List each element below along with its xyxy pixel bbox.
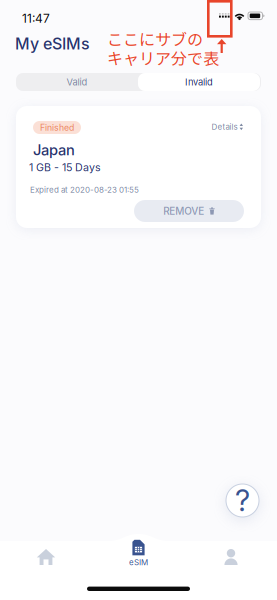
button[interactable]: Home	[0, 544, 92, 570]
button[interactable]: Valid	[16, 73, 138, 91]
staticText: ここにサブの	[107, 27, 203, 50]
staticText: Finished	[40, 122, 74, 133]
staticText: Details	[212, 122, 238, 132]
staticText: 1 GB - 15 Days	[29, 161, 101, 174]
button[interactable]: Invalid	[138, 73, 260, 91]
staticText: REMOVE	[163, 205, 204, 217]
button[interactable]: Help	[226, 484, 259, 517]
staticText: Invalid	[185, 76, 213, 88]
staticText: Valid	[66, 76, 87, 88]
staticText: キャリア分で表	[107, 46, 219, 69]
staticText: 11:47	[22, 11, 50, 25]
staticText: Japan	[33, 141, 75, 159]
staticText: ?	[235, 483, 250, 518]
button[interactable]: eSIM	[92, 540, 184, 567]
button[interactable]: REMOVE	[134, 200, 244, 222]
staticText: eSIM	[129, 557, 148, 567]
staticText: My eSIMs	[15, 34, 90, 53]
staticText: Expired at 2020-08-23 01:55	[30, 185, 139, 195]
button[interactable]: Details	[212, 122, 243, 132]
button[interactable]: Profile	[185, 544, 277, 570]
